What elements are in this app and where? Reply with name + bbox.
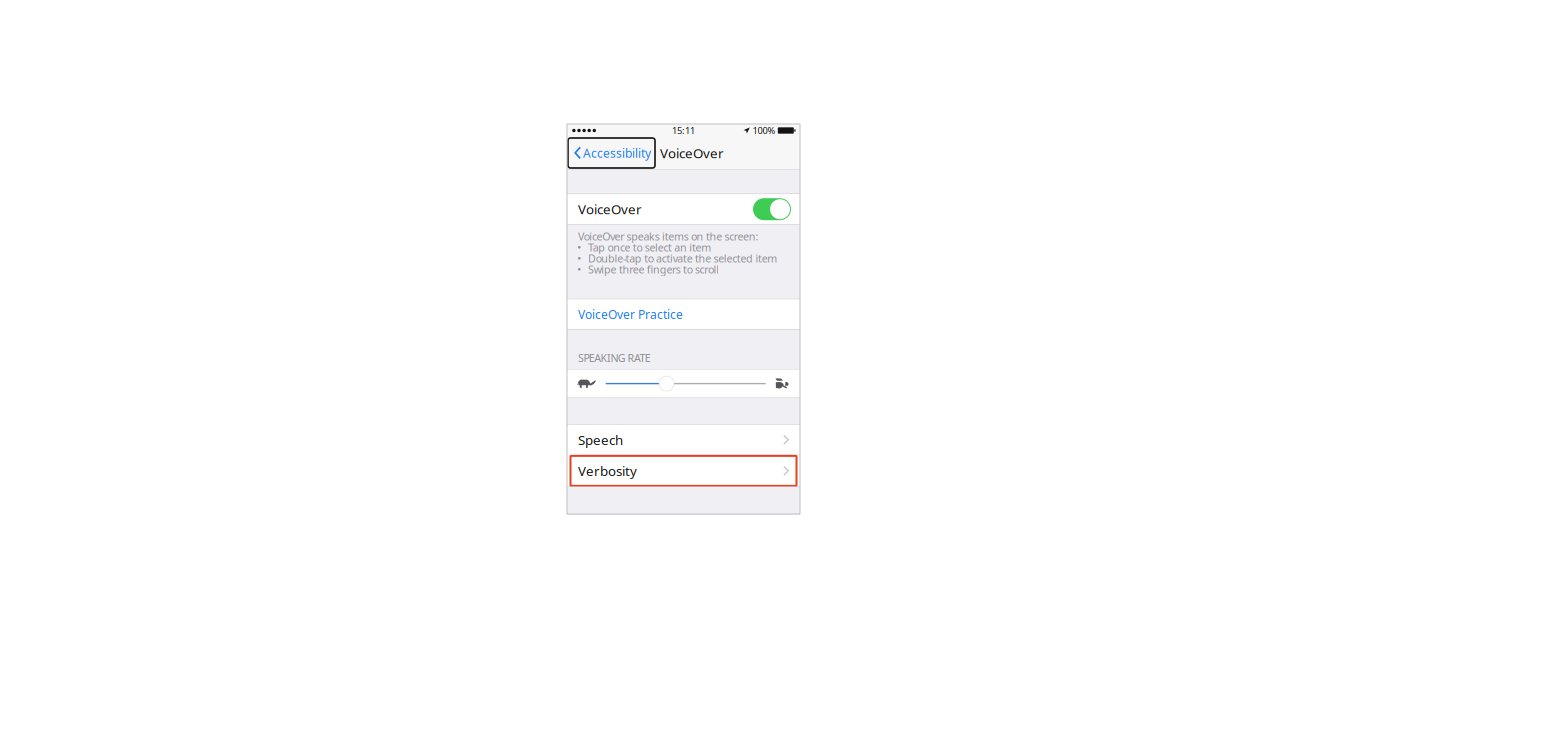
staticText: VoiceOver [660, 144, 724, 162]
staticText: Swipe three fingers to scroll [588, 262, 719, 276]
staticText: Accessibility [583, 145, 651, 161]
button[interactable]: Speech [567, 425, 800, 455]
staticText: 15:11 [672, 124, 695, 137]
staticText: Tap once to select an item [588, 240, 711, 254]
button[interactable]: VoiceOver Practice [567, 299, 800, 329]
staticText: SPEAKING RATE [578, 351, 651, 365]
staticText: 100% [752, 124, 775, 137]
staticText: VoiceOver [578, 200, 642, 218]
staticText: Verbosity [578, 462, 637, 480]
staticText: Speech [578, 431, 623, 449]
staticText: Double-tap to activate the selected item [588, 251, 777, 265]
staticText: VoiceOver speaks items on the screen: [578, 229, 758, 243]
button[interactable]: Accessibility [568, 138, 655, 168]
button[interactable]: VoiceOver, on [753, 198, 791, 220]
button[interactable]: Verbosity [567, 455, 800, 486]
staticText: VoiceOver Practice [578, 306, 683, 322]
